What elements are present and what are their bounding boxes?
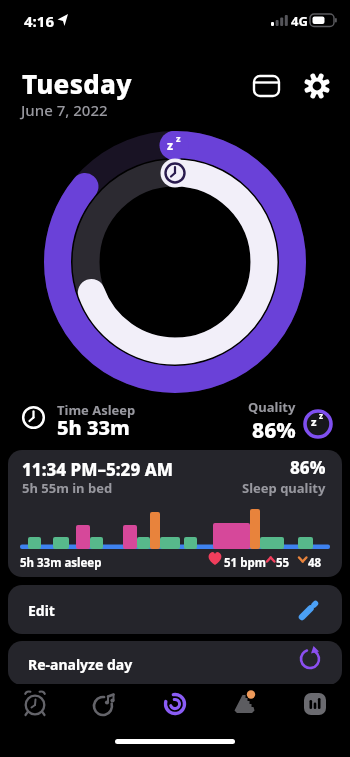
button[interactable] xyxy=(248,70,284,106)
staticText: 51 bpm xyxy=(224,555,266,571)
staticText: Tuesday xyxy=(22,66,132,101)
button[interactable] xyxy=(140,684,210,724)
staticText: 5h 33m xyxy=(57,414,130,441)
button[interactable]: Edit xyxy=(8,585,342,634)
button[interactable] xyxy=(210,684,280,724)
staticText: 86% xyxy=(290,456,326,479)
staticText: Quality xyxy=(248,398,296,416)
button[interactable] xyxy=(300,70,336,106)
staticText: 11:34 PM–5:29 AM xyxy=(22,458,173,481)
staticText: z xyxy=(176,132,181,144)
staticText: 48 xyxy=(308,555,322,571)
staticText: 4G xyxy=(291,12,308,30)
staticText: 55 xyxy=(276,555,290,571)
button[interactable] xyxy=(70,684,140,724)
staticText: June 7, 2022 xyxy=(21,100,108,120)
staticText: z xyxy=(311,414,317,429)
staticText: 5h 55m in bed xyxy=(22,479,113,497)
staticText: 5h 33m asleep xyxy=(20,555,102,571)
button[interactable]: Re-analyze day xyxy=(8,641,342,685)
staticText: 86% xyxy=(252,416,296,445)
staticText: z xyxy=(167,137,173,153)
button[interactable] xyxy=(280,684,350,724)
staticText: Edit xyxy=(28,601,55,620)
button[interactable]: 11:34 PM–5:29 AM xyxy=(8,450,342,577)
staticText: Time Asleep xyxy=(57,401,136,419)
staticText: z xyxy=(319,410,323,421)
staticText: 4:16 xyxy=(24,11,54,31)
staticText: Re-analyze day xyxy=(28,655,133,674)
staticText: Sleep quality xyxy=(242,479,326,497)
button[interactable] xyxy=(0,684,70,724)
